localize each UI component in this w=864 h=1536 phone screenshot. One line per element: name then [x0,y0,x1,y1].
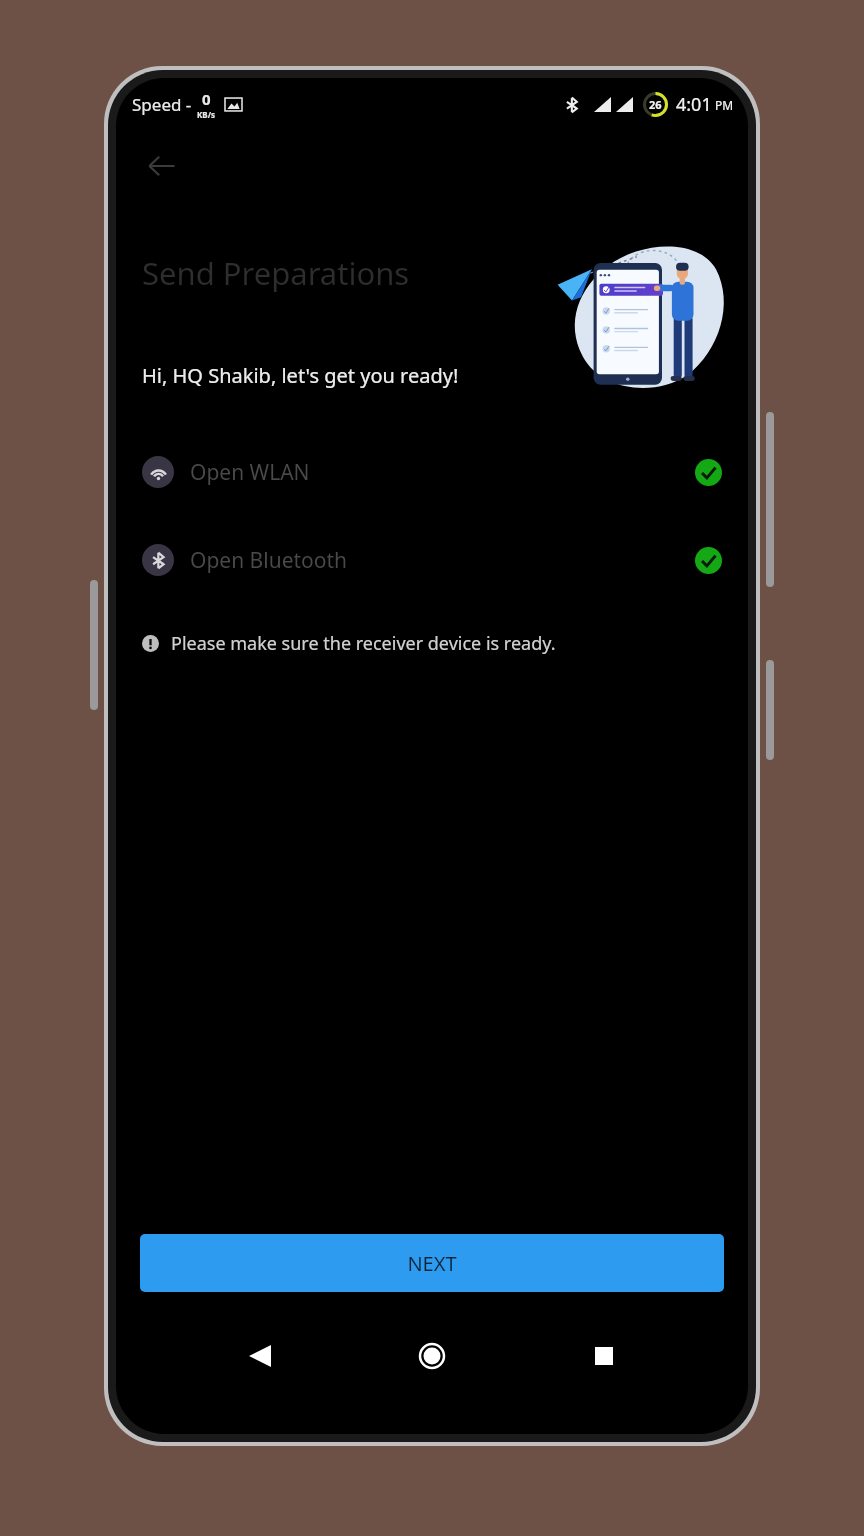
staticText: Speed - [132,93,192,116]
staticText: NEXT [407,1250,457,1277]
staticText: Open Bluetooth [190,546,348,575]
staticText: Hi, HQ Shakib, let's get you ready! [142,362,459,389]
staticText: 0 [202,89,211,109]
button[interactable]: Back [232,1328,288,1384]
button[interactable]: NEXT [140,1234,724,1292]
button[interactable]: Recents [576,1328,632,1384]
staticText: Send Preparations [142,252,410,294]
button[interactable]: Back [136,140,188,192]
staticText: KB/s [197,109,215,120]
button[interactable]: Open Bluetooth [116,537,748,583]
staticText: 26 [649,97,662,112]
staticText: Open WLAN [190,458,310,487]
staticText: Please make sure the receiver device is … [171,631,556,656]
button[interactable]: Open WLAN [116,449,748,495]
button[interactable]: Home [404,1328,460,1384]
staticText: 4:01 [676,92,712,117]
staticText: PM [715,97,734,113]
